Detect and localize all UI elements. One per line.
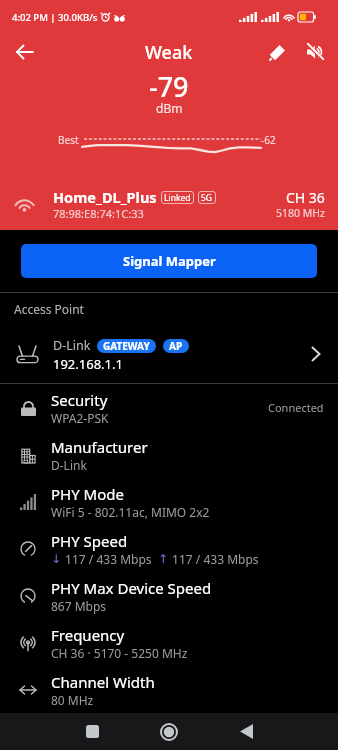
staticText: 117 / 433 Mbps — [62, 551, 158, 567]
button[interactable]: Security — [0, 384, 338, 431]
button[interactable]: PHY Max Device Speed — [0, 572, 338, 619]
staticText: Home_DL_Plus — [53, 187, 157, 207]
button[interactable]: Signal Mapper — [21, 244, 317, 278]
staticText: AP — [169, 339, 183, 353]
button[interactable]: Back — [6, 33, 44, 71]
staticText: Access Point — [14, 301, 84, 317]
staticText: -79 — [149, 68, 189, 105]
staticText: ↓ — [51, 552, 62, 566]
staticText: dBm — [156, 100, 183, 116]
button[interactable]: Home — [145, 713, 193, 750]
staticText: Linked — [164, 192, 191, 204]
staticText: Manufacturer — [51, 437, 148, 457]
staticText: CH 36 — [286, 188, 325, 207]
button[interactable]: Mute notifications — [296, 33, 334, 71]
staticText: 78:98:E8:74:1C:33 — [53, 206, 144, 221]
button[interactable]: Manufacturer — [0, 431, 338, 478]
staticText: 80 MHz — [51, 692, 94, 708]
staticText: 117 / 433 Mbps — [169, 551, 259, 567]
button[interactable]: D-Link — [0, 325, 338, 383]
staticText: 192.168.1.1 — [53, 355, 123, 373]
button[interactable]: PHY Speed — [0, 525, 338, 572]
staticText: 5G — [201, 192, 213, 204]
staticText: ↑ — [158, 552, 169, 566]
staticText: WPA2-PSK — [51, 410, 109, 426]
staticText: 867 Mbps — [51, 598, 107, 614]
button[interactable]: Edit — [258, 33, 296, 71]
staticText: Frequency — [51, 625, 125, 645]
staticText: 5180 MHz — [276, 206, 325, 220]
staticText: CH 36 · 5170 - 5250 MHz — [51, 645, 188, 661]
staticText: PHY Mode — [51, 484, 124, 504]
staticText: 4:02 PM | 30.0KB/s — [12, 11, 98, 24]
staticText: Weak — [145, 40, 193, 65]
staticText: PHY Max Device Speed — [51, 578, 212, 598]
staticText: Security — [51, 390, 108, 410]
staticText: D-Link — [53, 337, 91, 354]
staticText: Connected — [268, 400, 324, 415]
staticText: -62 — [261, 133, 276, 147]
button[interactable]: Back — [222, 713, 270, 750]
button[interactable]: PHY Mode — [0, 478, 338, 525]
button[interactable]: Frequency — [0, 619, 338, 666]
staticText: D-Link — [51, 457, 87, 473]
staticText: Signal Mapper — [123, 252, 216, 270]
staticText: WiFi 5 - 802.11ac, MIMO 2x2 — [51, 504, 210, 520]
staticText: PHY Speed — [51, 531, 128, 551]
staticText: GATEWAY — [103, 339, 150, 353]
button[interactable]: Channel Width — [0, 666, 338, 713]
staticText: Best — [58, 133, 79, 147]
staticText: Channel Width — [51, 672, 155, 692]
button[interactable]: Recent apps — [68, 713, 116, 750]
